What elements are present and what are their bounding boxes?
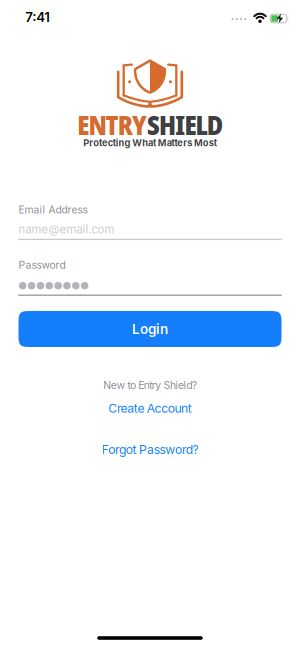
- staticText: New to Entry Shield?: [103, 379, 197, 392]
- staticText: Forgot Password?: [101, 442, 198, 457]
- staticText: ENTRY: [77, 107, 147, 142]
- staticText: Email Address: [18, 203, 87, 216]
- staticText: name@email.com: [18, 222, 114, 236]
- button[interactable]: Login: [18, 311, 281, 347]
- staticText: Protecting What Matters Most: [83, 137, 217, 148]
- button[interactable]: Create Account: [108, 401, 192, 416]
- staticText: Create Account: [108, 401, 192, 416]
- button[interactable]: Forgot Password?: [101, 442, 198, 457]
- staticText: SHIELD: [147, 107, 223, 142]
- staticText: Password: [18, 259, 65, 271]
- staticText: 7:41: [25, 9, 50, 25]
- staticText: Login: [132, 321, 168, 337]
